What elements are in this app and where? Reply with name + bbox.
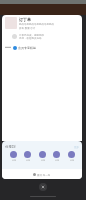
staticText: 订单已完成，感谢您的 <box>19 34 44 37</box>
staticText: 分享 <box>12 159 16 162</box>
staticText: 微信 扫一扫 <box>37 173 51 176</box>
staticText: 分享到 <box>5 145 16 149</box>
staticText: 更多 <box>74 146 79 149</box>
button[interactable]: 分享 <box>10 151 17 162</box>
staticText: 商品信息商品信息商品信息商品 <box>19 23 54 26</box>
staticText: 分享 <box>70 159 74 162</box>
button[interactable]: Close <box>39 183 47 191</box>
staticText: 价格 数量 合计 <box>19 26 36 29</box>
button[interactable]: 分享 <box>68 151 75 162</box>
button[interactable]: 分享 <box>24 151 31 162</box>
staticText: 分享 <box>26 159 30 162</box>
staticText: 订丁单 <box>19 17 31 22</box>
button[interactable]: 分享 <box>39 151 46 162</box>
staticText: 分享 <box>41 159 45 162</box>
button[interactable]: 微信 扫一扫 <box>2 169 82 179</box>
staticText: 会员专享权益 <box>18 46 36 50</box>
staticText: 支持，欢迎再次光临 <box>19 37 42 40</box>
staticText: 分享 <box>55 159 59 162</box>
button[interactable]: 分享 <box>53 151 60 162</box>
